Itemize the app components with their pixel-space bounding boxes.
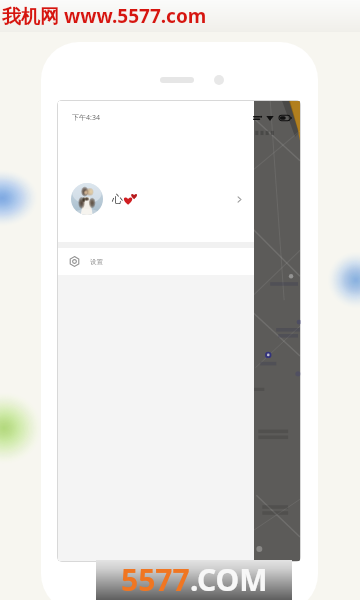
staticText: 设置: [90, 258, 103, 266]
button[interactable]: 心: [58, 156, 254, 242]
button[interactable]: 设置: [58, 248, 254, 275]
staticText: 我机网 www.5577.com: [2, 3, 207, 29]
staticText: 心: [112, 192, 123, 206]
other: Open profile: [235, 195, 244, 204]
staticText: .COM: [190, 559, 268, 599]
staticText: 5577: [121, 559, 190, 599]
staticText: 下午4:34: [72, 113, 100, 123]
